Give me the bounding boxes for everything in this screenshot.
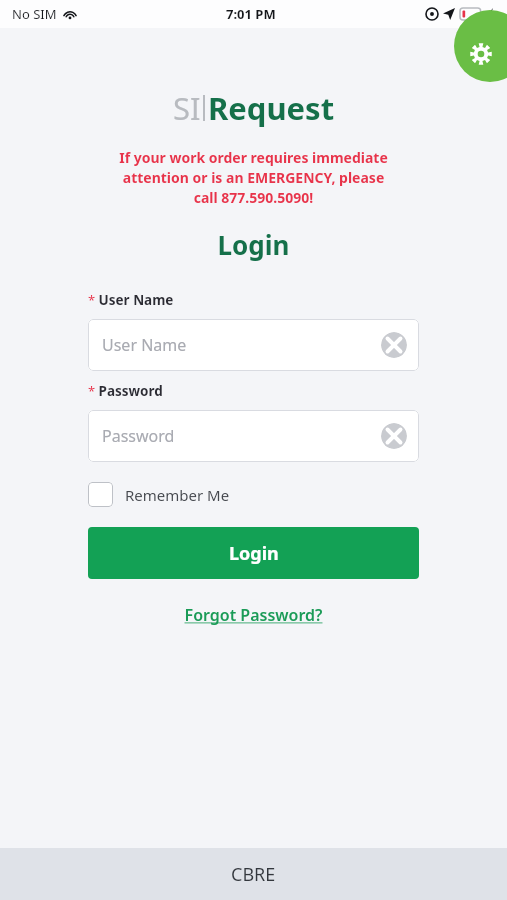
staticText: Password: [102, 425, 381, 447]
button[interactable]: Password: [88, 410, 419, 462]
staticText: Login: [0, 227, 507, 262]
staticText: 7:01 PM: [226, 5, 276, 23]
staticText: Request: [208, 87, 335, 129]
staticText: * User Name: [88, 291, 174, 309]
staticText: User Name: [102, 334, 381, 356]
button[interactable]: Clear Password: [381, 423, 407, 449]
staticText: No SIM: [12, 5, 57, 23]
button[interactable]: Forgot Password?: [0, 600, 507, 630]
button[interactable]: Login: [88, 527, 419, 579]
staticText: SI: [173, 87, 201, 129]
staticText: If your work order requires immediate at…: [60, 148, 447, 207]
staticText: Remember Me: [125, 485, 230, 505]
staticText: CBRE: [231, 862, 276, 887]
button[interactable]: User Name: [88, 319, 419, 371]
button[interactable]: Remember Me: [88, 482, 230, 507]
button[interactable]: Clear User Name: [381, 332, 407, 358]
staticText: * Password: [88, 382, 163, 400]
button[interactable]: Settings: [454, 10, 507, 82]
staticText: Login: [229, 541, 279, 566]
